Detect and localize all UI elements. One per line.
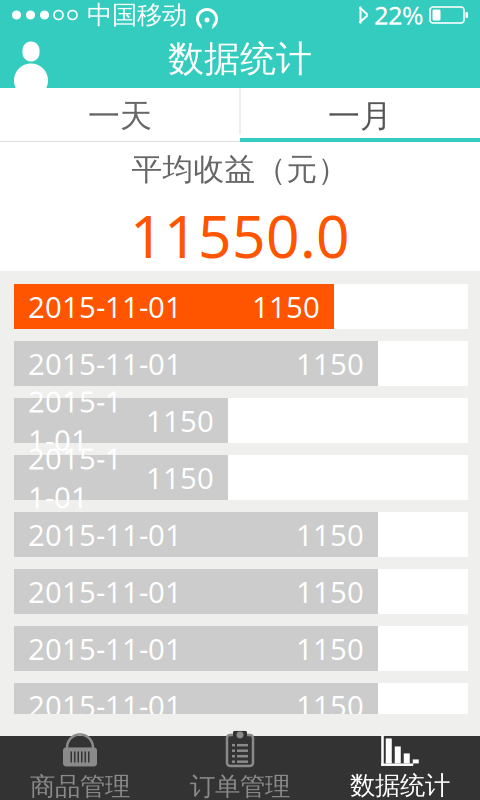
- staticText: 2015-11-01: [28, 686, 182, 725]
- button[interactable]: 2015-11-01: [0, 455, 480, 500]
- button[interactable]: 数据统计: [320, 736, 480, 800]
- staticText: 2015-11-01: [28, 629, 182, 668]
- button[interactable]: 2015-11-01: [0, 284, 480, 329]
- staticText: 22%: [374, 0, 424, 32]
- button[interactable]: 2015-11-01: [0, 341, 480, 386]
- staticText: 商品管理: [30, 771, 130, 800]
- staticText: 2015-11-01: [28, 344, 182, 383]
- staticText: 1150: [296, 629, 364, 668]
- button[interactable]: 2015-11-01: [0, 398, 480, 443]
- staticText: 2015-11-01: [28, 287, 182, 326]
- button[interactable]: 2015-11-01: [0, 683, 480, 728]
- staticText: 数据统计: [350, 770, 450, 800]
- button[interactable]: 商品管理: [0, 736, 160, 800]
- staticText: 订单管理: [190, 771, 290, 800]
- staticText: 1150: [146, 458, 214, 497]
- button[interactable]: 2015-11-01: [0, 626, 480, 671]
- button[interactable]: 一月: [240, 88, 480, 144]
- staticText: 2015-11-01: [28, 438, 122, 516]
- staticText: 1150: [296, 686, 364, 725]
- staticText: 平均收益（元）: [131, 151, 348, 188]
- staticText: 2015-11-01: [28, 381, 122, 459]
- staticText: 中国移动: [87, 0, 187, 30]
- staticText: 一天: [88, 96, 152, 136]
- staticText: 11550.0: [130, 196, 350, 274]
- button[interactable]: 2015-11-01: [0, 512, 480, 557]
- button[interactable]: 个人中心: [0, 30, 62, 88]
- button[interactable]: 2015-11-01: [0, 569, 480, 614]
- staticText: 1150: [296, 572, 364, 611]
- staticText: 一月: [328, 96, 392, 136]
- staticText: 2015-11-01: [28, 515, 182, 554]
- staticText: 2015-11-01: [28, 572, 182, 611]
- staticText: 1150: [296, 344, 364, 383]
- staticText: 1150: [252, 287, 320, 326]
- staticText: 1150: [146, 401, 214, 440]
- staticText: 1150: [296, 515, 364, 554]
- staticText: 数据统计: [168, 37, 312, 81]
- button[interactable]: 一天: [0, 88, 240, 144]
- button[interactable]: 订单管理: [160, 736, 320, 800]
